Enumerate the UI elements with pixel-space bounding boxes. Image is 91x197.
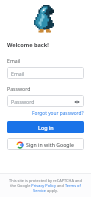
- staticText: This site is protected by reCAPTCHA and …: [6, 178, 85, 193]
- button[interactable]: Password: [7, 95, 84, 107]
- button[interactable]: Show password: [73, 98, 80, 105]
- staticText: Forgot your password?: [32, 110, 84, 117]
- staticText: Sign in with Google: [26, 141, 74, 148]
- staticText: Password: [11, 98, 35, 105]
- staticText: Log in: [38, 124, 54, 131]
- button[interactable]: Sign in with Google: [7, 138, 84, 150]
- button[interactable]: Forgot your password?: [32, 110, 84, 117]
- staticText: Welcome back!: [7, 41, 49, 49]
- staticText: Email: [11, 70, 25, 77]
- staticText: Email: [7, 57, 21, 64]
- button[interactable]: Email: [7, 67, 84, 79]
- staticText: Password: [7, 85, 31, 92]
- button[interactable]: Log in: [7, 121, 84, 133]
